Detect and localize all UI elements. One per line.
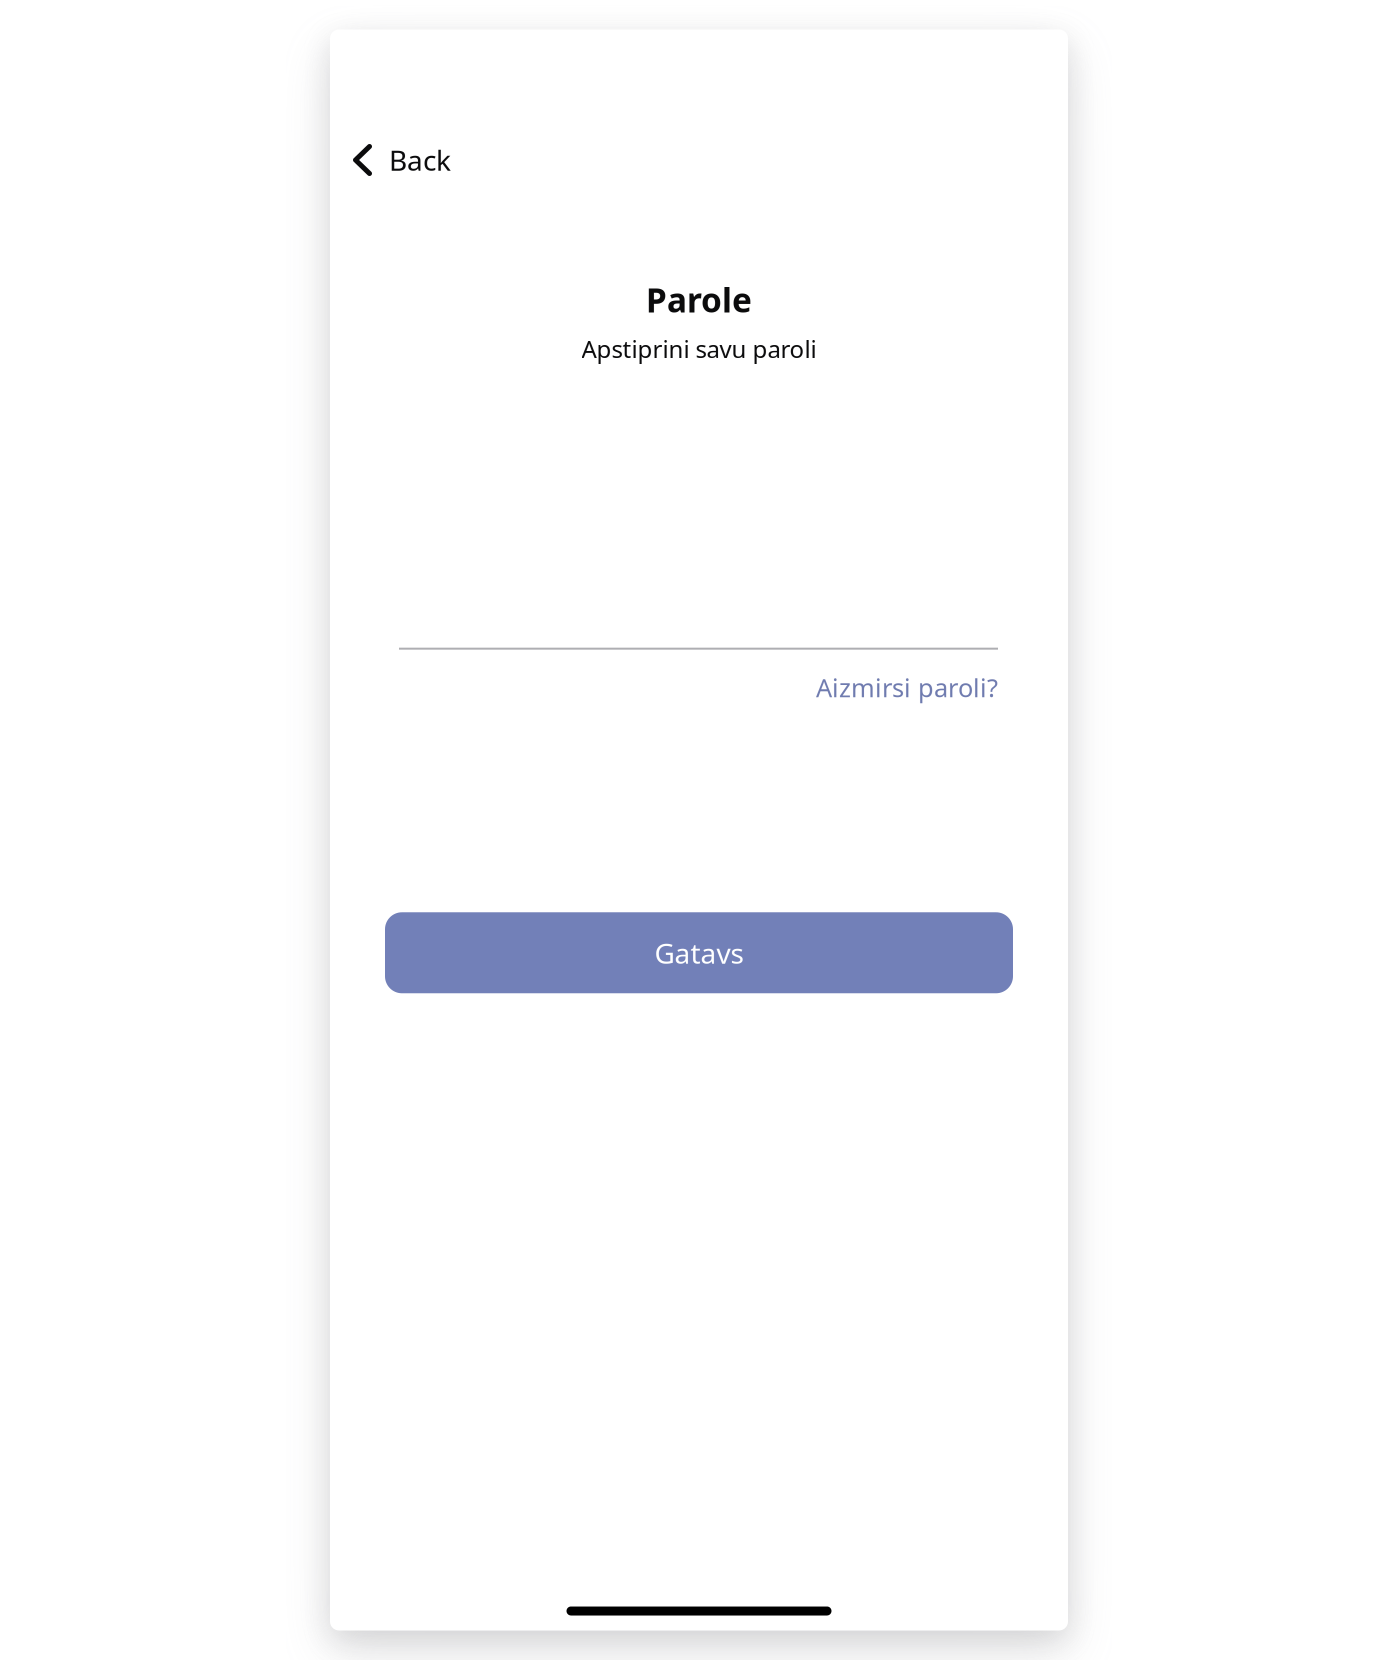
staticText: Aizmirsi paroli? (816, 671, 998, 704)
staticText: Gatavs (654, 934, 743, 971)
staticText: Parole (646, 277, 752, 322)
button[interactable]: Aizmirsi paroli? (816, 650, 998, 704)
staticText: Apstiprini savu paroli (581, 333, 816, 365)
staticText: Back (389, 141, 451, 179)
button[interactable]: Back (330, 141, 451, 178)
button[interactable]: Password (399, 592, 998, 650)
button[interactable]: Gatavs (385, 912, 1013, 993)
